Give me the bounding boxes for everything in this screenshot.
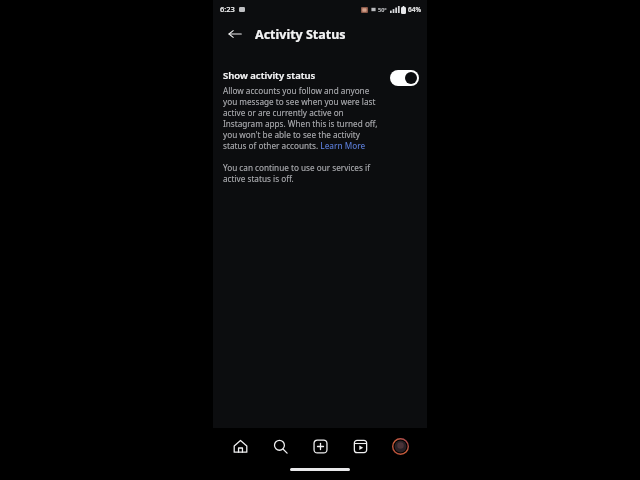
- button[interactable]: Show activity status toggle: [390, 70, 419, 86]
- staticText: Activity Status: [255, 26, 346, 43]
- button[interactable]: Profile: [383, 430, 417, 462]
- staticText: You can continue to use our services if …: [223, 162, 391, 184]
- staticText: 64%: [408, 5, 421, 14]
- staticText: Allow accounts you follow and anyone you…: [223, 85, 384, 151]
- button[interactable]: Show activity status: [223, 69, 419, 151]
- staticText: 50°: [378, 6, 387, 13]
- staticText: 6:23: [220, 4, 235, 14]
- button[interactable]: Reels: [343, 430, 377, 462]
- staticText: Show activity status: [223, 69, 316, 82]
- button[interactable]: Back: [223, 22, 247, 46]
- button[interactable]: Search: [263, 430, 297, 462]
- button[interactable]: Create: [303, 430, 337, 462]
- button[interactable]: Home: [223, 430, 257, 462]
